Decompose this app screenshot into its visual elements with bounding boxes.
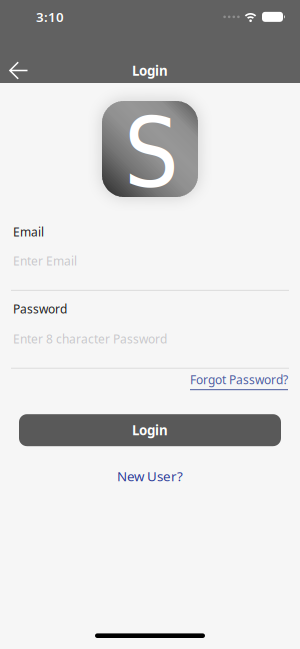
staticText: Enter Email [13,253,77,269]
button[interactable] [0,61,29,80]
button[interactable]: New User? [117,467,183,485]
staticText: Login [132,62,168,79]
staticText: S [124,98,179,209]
staticText: New User? [117,467,183,485]
button[interactable]: Login [19,414,281,446]
staticText: Email [13,224,44,240]
staticText: 3:10 [36,8,64,26]
staticText: Forgot Password? [190,372,288,388]
button[interactable]: Enter 8 character Password [11,317,289,369]
button[interactable]: Enter Email [11,240,289,291]
button[interactable]: Forgot Password? [190,372,288,390]
staticText: Password [13,301,67,317]
staticText: Login [132,421,168,439]
staticText: Enter 8 character Password [13,331,167,347]
